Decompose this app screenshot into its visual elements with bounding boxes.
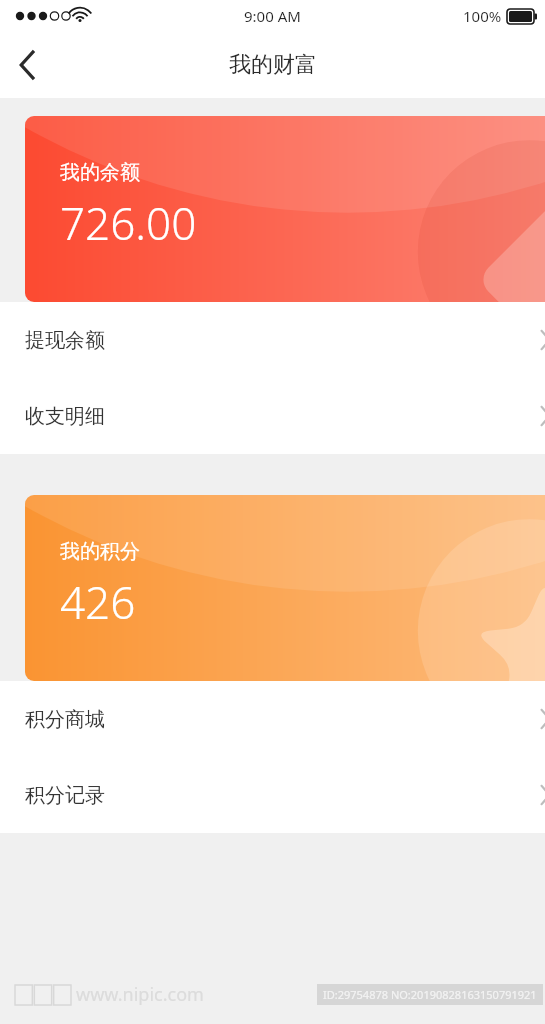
staticText: 9:00 AM bbox=[244, 6, 301, 26]
button[interactable]: 我的余额 bbox=[25, 116, 545, 302]
staticText: 我的余额 bbox=[60, 160, 140, 185]
staticText: 726.00 bbox=[60, 193, 197, 253]
staticText: 积分记录 bbox=[25, 783, 105, 808]
button[interactable]: 提现余额 bbox=[0, 302, 545, 378]
staticText: 426 bbox=[60, 572, 136, 632]
staticText: 提现余额 bbox=[25, 328, 105, 353]
button[interactable]: 积分记录 bbox=[0, 757, 545, 833]
button[interactable]: 收支明细 bbox=[0, 378, 545, 454]
button[interactable]: 积分商城 bbox=[0, 681, 545, 757]
staticText: 我的财富 bbox=[229, 51, 317, 79]
staticText: 我的积分 bbox=[60, 539, 140, 564]
staticText: 积分商城 bbox=[25, 707, 105, 732]
staticText: 收支明细 bbox=[25, 404, 105, 429]
button[interactable]: Back bbox=[0, 37, 56, 93]
staticText: www.nipic.com bbox=[76, 982, 204, 1007]
staticText: ID:29754878 NO:20190828163150791921 bbox=[323, 987, 537, 1002]
staticText: 100% bbox=[463, 6, 502, 26]
button[interactable]: 我的积分 bbox=[25, 495, 545, 681]
